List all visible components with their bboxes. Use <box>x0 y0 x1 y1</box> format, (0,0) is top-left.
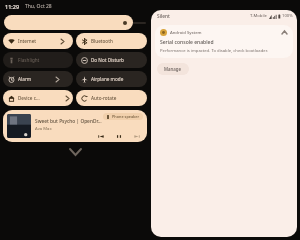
button[interactable]: Flashlight <box>3 52 73 68</box>
button[interactable]: Bluetooth <box>76 33 147 49</box>
staticText: 100% <box>282 13 293 19</box>
button[interactable]: Pause <box>114 135 123 138</box>
staticText: Alarm <box>18 76 32 82</box>
staticText: Device controls <box>18 95 42 101</box>
button[interactable]: Brightness <box>4 15 133 30</box>
button[interactable]: Auto-rotate <box>76 90 147 106</box>
staticText: Phone speaker <box>112 114 140 119</box>
staticText: Thu, Oct 28 <box>25 3 52 10</box>
staticText: Bluetooth <box>91 38 113 44</box>
button[interactable]: Device controls <box>3 90 73 106</box>
staticText: Android System <box>170 30 202 36</box>
staticText: 11:29 <box>5 3 20 10</box>
button[interactable]: Expand <box>64 146 86 157</box>
button[interactable]: Alarm <box>3 71 73 87</box>
button[interactable]: Sweet but Psycho | OpenDr… <box>3 110 147 142</box>
staticText: Silent <box>157 13 170 20</box>
staticText: Serial console enabled <box>160 39 214 46</box>
button[interactable]: Expand notification <box>281 29 288 36</box>
button[interactable]: Phone speaker <box>103 113 143 120</box>
staticText: Sweet but Psycho | OpenDr… <box>35 118 141 125</box>
staticText: Ava Max <box>35 126 52 132</box>
button[interactable]: Do Not Disturb <box>76 52 147 68</box>
staticText: Auto-rotate <box>91 95 117 101</box>
button[interactable]: Android System <box>155 25 293 58</box>
button[interactable]: Previous <box>96 135 105 138</box>
button[interactable]: Manage <box>157 63 189 75</box>
button[interactable]: Airplane mode <box>76 71 147 87</box>
staticText: Do Not Disturb <box>91 57 124 63</box>
staticText: Manage <box>164 66 182 72</box>
button[interactable]: Internet <box>3 33 73 49</box>
staticText: Performance is impacted. To disable, che… <box>160 48 268 54</box>
staticText: T-Mobile <box>250 13 267 19</box>
staticText: Internet <box>18 38 37 44</box>
staticText: Airplane mode <box>91 76 124 82</box>
button[interactable]: Next <box>132 135 141 138</box>
staticText: Flashlight <box>18 57 40 63</box>
